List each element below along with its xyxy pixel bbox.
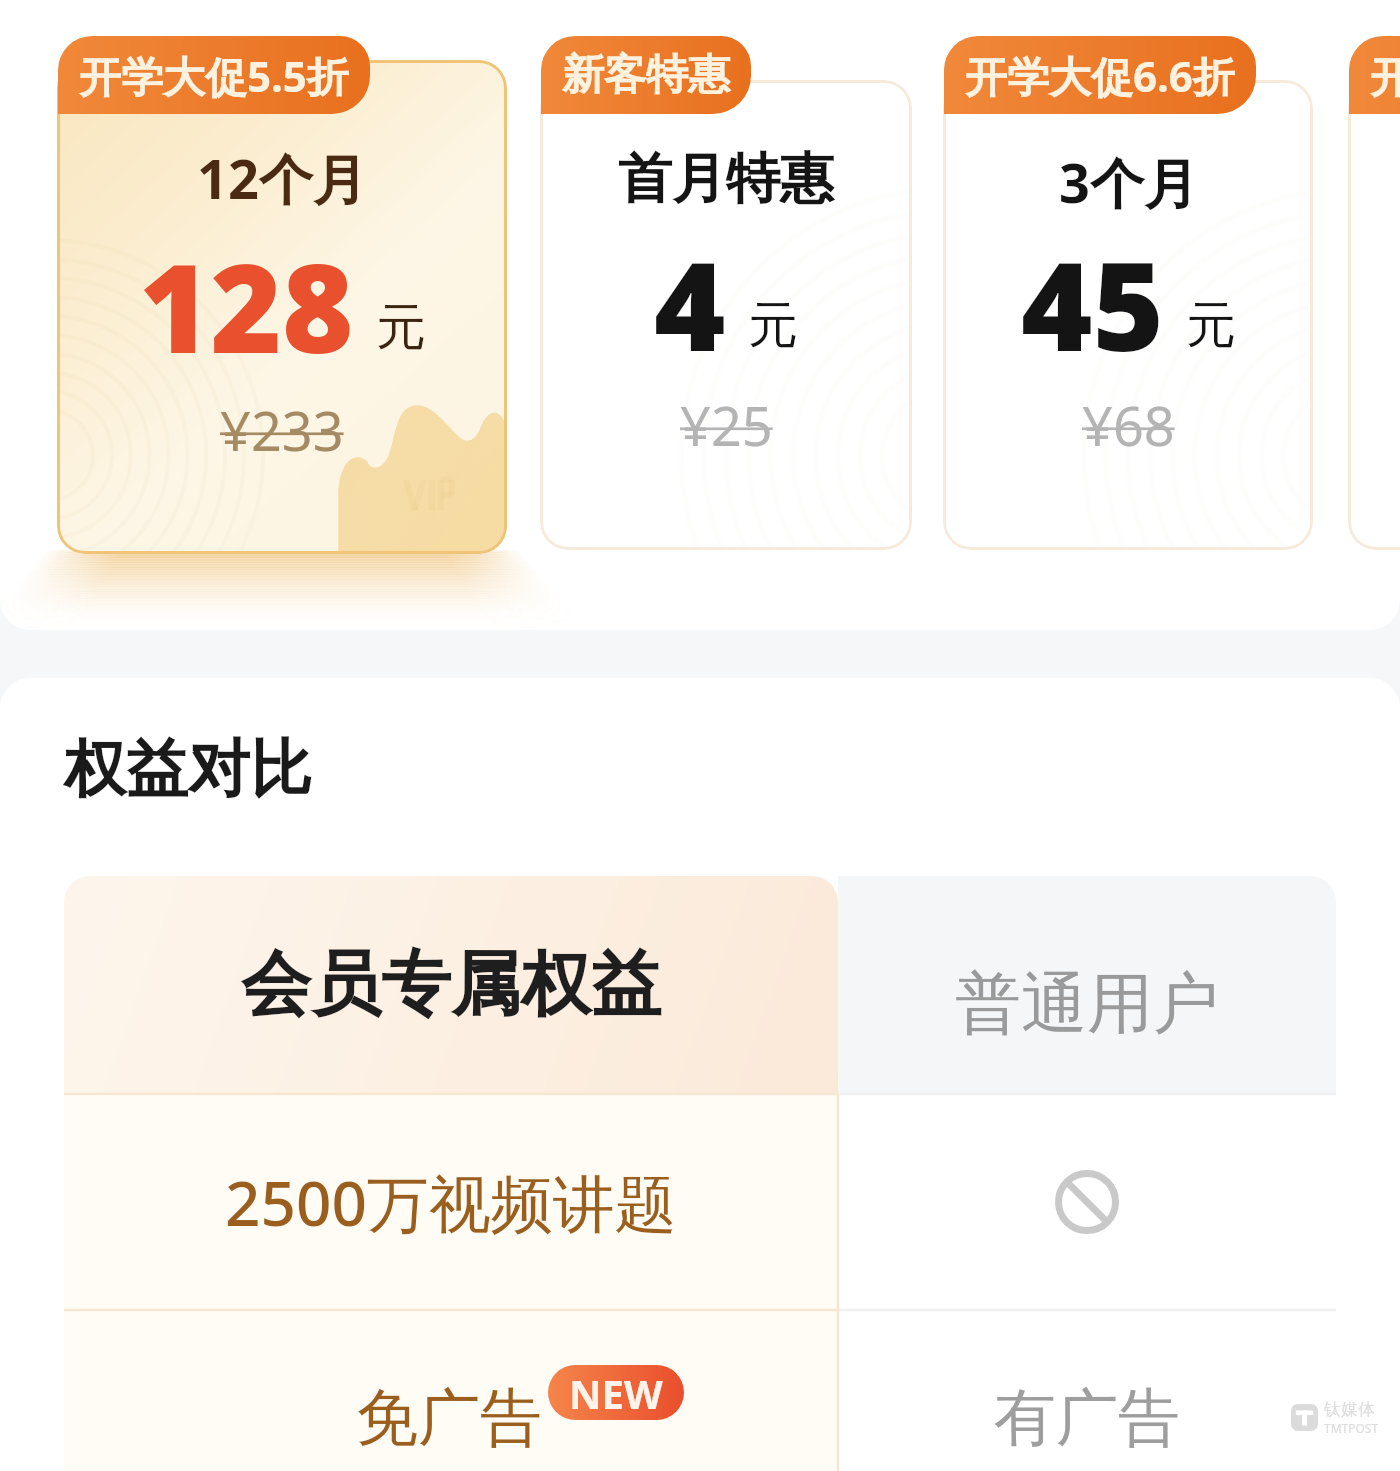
staticText: ¥68 [1082, 388, 1175, 462]
button[interactable]: 开学大促5.5折 [1370, 36, 1400, 114]
button[interactable]: 普通用户 [838, 876, 1336, 1094]
staticText: 开学大促6.6折 [965, 47, 1235, 104]
button[interactable]: 6个月 [1348, 80, 1400, 550]
button[interactable]: 开学大促5.5折 [79, 36, 349, 114]
staticText: 12个月 [197, 141, 367, 215]
staticText: 钛媒体 [1324, 1399, 1375, 1420]
staticText: 2500万视频讲题 [225, 1160, 677, 1245]
staticText: 有广告 [994, 1379, 1180, 1457]
staticText: 45 [1021, 221, 1164, 387]
staticText: 免广告 [356, 1379, 542, 1457]
staticText: 权益对比 [64, 730, 312, 808]
staticText: 3个月 [1059, 145, 1198, 219]
staticText: 开学大促5.5折 [1370, 47, 1400, 104]
button[interactable]: 12个月 [57, 60, 507, 554]
button[interactable]: 首月特惠 [540, 80, 912, 550]
button[interactable]: 会员专属权益 [64, 876, 838, 1094]
staticText: 会员专属权益 [241, 941, 661, 1029]
staticText: 元 [748, 294, 798, 357]
staticText: 开学大促5.5折 [79, 47, 349, 104]
button[interactable]: 免广告 [64, 1310, 838, 1471]
button[interactable]: 新客特惠 [562, 36, 730, 114]
staticText: 新客特惠 [562, 49, 730, 102]
other: Not included [1055, 1170, 1119, 1234]
staticText: 首月特惠 [618, 145, 834, 213]
staticText: ¥25 [680, 388, 773, 462]
staticText: 4 [654, 221, 726, 387]
button[interactable]: 2500万视频讲题 [64, 1094, 838, 1310]
staticText: ¥233 [220, 393, 344, 467]
staticText: TMTPOST [1324, 1420, 1379, 1436]
staticText: 128 [139, 223, 354, 389]
staticText: NEW [569, 1366, 663, 1420]
staticText: 元 [376, 296, 426, 359]
button[interactable]: 开学大促6.6折 [965, 36, 1235, 114]
button[interactable]: 3个月 [943, 80, 1313, 550]
staticText: 普通用户 [955, 962, 1219, 1045]
staticText: 元 [1186, 294, 1236, 357]
